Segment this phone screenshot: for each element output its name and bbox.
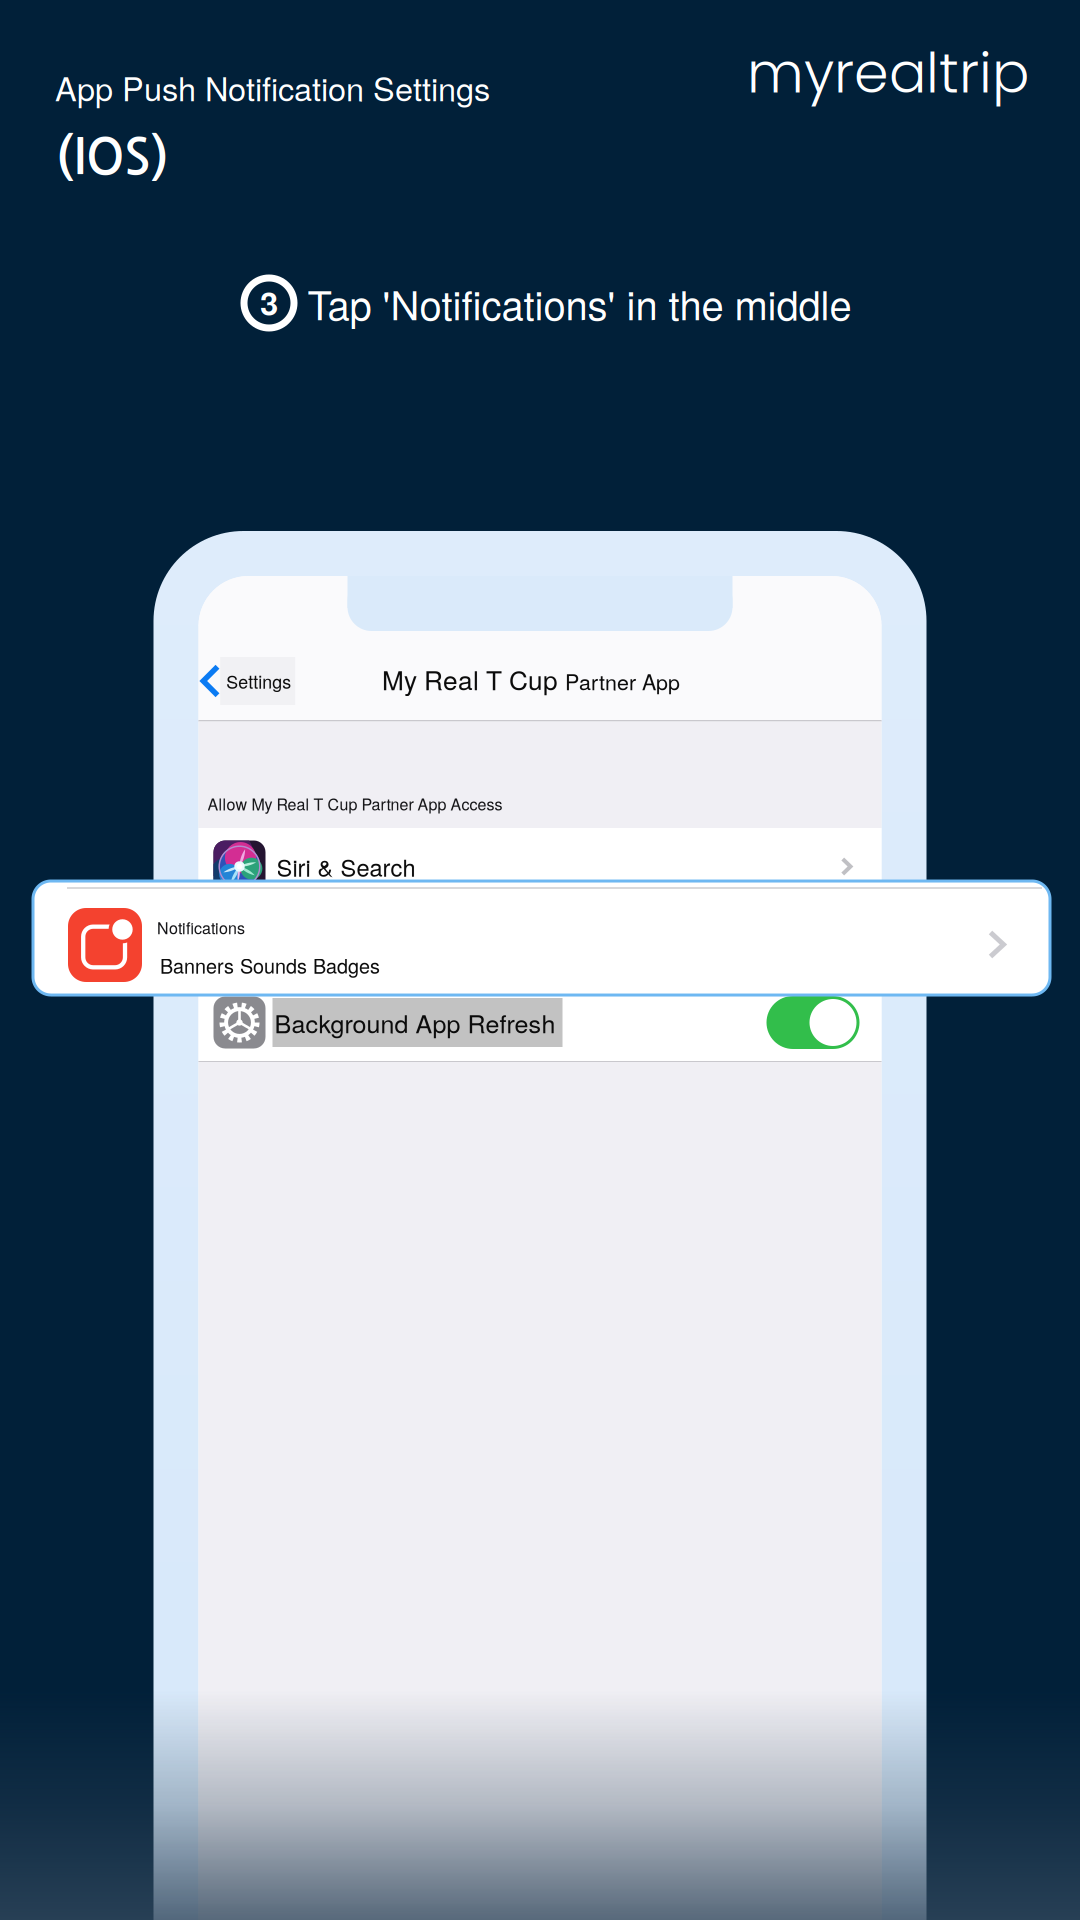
staticText: Siri & Search bbox=[276, 850, 415, 883]
staticText: App Push Notification Settings bbox=[55, 64, 490, 110]
button[interactable]: Siri & Search bbox=[198, 828, 881, 905]
staticText: 3 bbox=[260, 278, 278, 326]
button[interactable]: Notifications bbox=[198, 906, 881, 983]
staticText: Partner App bbox=[565, 666, 680, 696]
staticText: Banners Sounds Badges bbox=[160, 951, 380, 979]
staticText: My Real T Cup bbox=[382, 660, 558, 698]
button[interactable]: Settings bbox=[198, 642, 295, 720]
button[interactable]: Notifications bbox=[33, 881, 1050, 995]
staticText: Notifications bbox=[276, 928, 405, 961]
staticText: myrealtrip bbox=[747, 34, 1029, 112]
staticText: Allow My Real T Cup Partner App Access bbox=[207, 792, 502, 815]
staticText: (IOS) bbox=[56, 133, 169, 181]
staticText: Notifications bbox=[157, 916, 245, 939]
staticText: Settings bbox=[226, 668, 291, 694]
staticText: Background App Refresh bbox=[274, 1005, 555, 1040]
staticText: Tap 'Notifications' in the middle bbox=[307, 274, 851, 332]
